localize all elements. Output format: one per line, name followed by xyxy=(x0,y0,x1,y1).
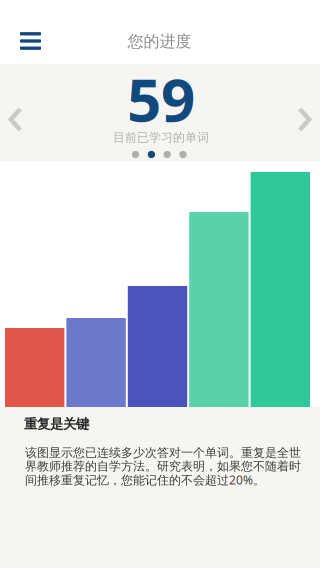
button[interactable]: Menu xyxy=(8,18,52,64)
button[interactable]: Next xyxy=(284,94,320,144)
staticText: 界教师推荐的自学方法。研究表明，如果您不随着时 xyxy=(25,459,301,474)
staticText: 该图显示您已连续多少次答对一个单词。重复是全世 xyxy=(25,445,301,460)
staticText: 目前已学习的单词 xyxy=(113,130,209,145)
staticText: 间推移重复记忆，您能记住的不会超过20%。 xyxy=(25,472,265,488)
staticText: 59 xyxy=(127,59,195,138)
staticText: 重复是关键 xyxy=(24,416,89,432)
staticText: 您的进度 xyxy=(127,32,191,51)
button[interactable]: Previous xyxy=(0,94,35,144)
